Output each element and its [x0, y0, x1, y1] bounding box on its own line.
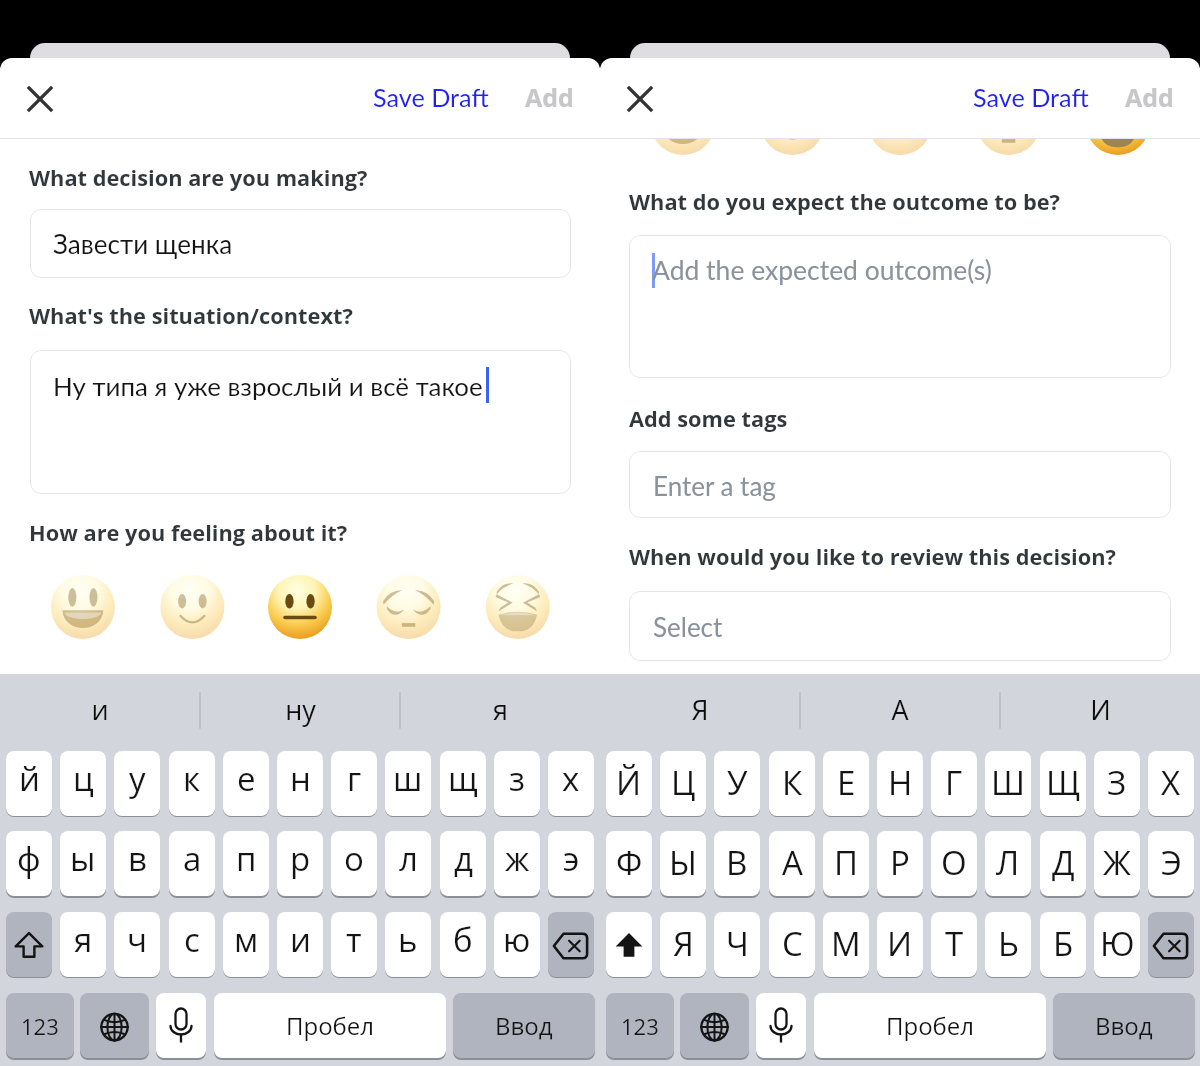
button[interactable]: ь — [385, 912, 431, 977]
button[interactable]: Ввод — [1053, 993, 1195, 1058]
button[interactable]: х — [548, 751, 594, 816]
button[interactable]: К — [769, 751, 815, 816]
button[interactable]: с — [169, 912, 215, 977]
button[interactable]: Sad — [377, 575, 441, 639]
button[interactable]: к — [169, 751, 215, 816]
button[interactable]: щ — [440, 751, 486, 816]
button[interactable]: з — [494, 751, 540, 816]
button[interactable]: П — [823, 831, 869, 896]
button[interactable]: Backspace — [548, 912, 594, 977]
button[interactable]: ы — [60, 831, 106, 896]
button[interactable]: Пробел — [214, 993, 446, 1058]
button[interactable]: е — [223, 751, 269, 816]
button[interactable]: О — [931, 831, 977, 896]
button[interactable]: ю — [494, 912, 540, 977]
button[interactable]: Пробел — [814, 993, 1046, 1058]
button[interactable]: Ь — [985, 912, 1031, 977]
button[interactable]: Б — [1040, 912, 1086, 977]
button[interactable]: ц — [60, 751, 106, 816]
button[interactable]: о — [331, 831, 377, 896]
button[interactable]: э — [548, 831, 594, 896]
button[interactable]: 123 — [606, 993, 674, 1058]
button[interactable]: ш — [385, 751, 431, 816]
button[interactable]: у — [114, 751, 160, 816]
button[interactable]: м — [223, 912, 269, 977]
button[interactable]: Add — [1115, 68, 1184, 126]
button[interactable]: Ц — [660, 751, 706, 816]
button[interactable]: Neutral — [268, 575, 332, 639]
button[interactable]: С — [769, 912, 815, 977]
button[interactable]: Ж — [1094, 831, 1140, 896]
button[interactable]: А — [769, 831, 815, 896]
button[interactable]: и — [277, 912, 323, 977]
button[interactable]: г — [331, 751, 377, 816]
button[interactable]: я — [60, 912, 106, 977]
button[interactable]: Г — [931, 751, 977, 816]
button[interactable]: Ш — [985, 751, 1031, 816]
button[interactable]: Т — [931, 912, 977, 977]
button[interactable]: Д — [1040, 831, 1086, 896]
button[interactable]: У — [714, 751, 760, 816]
button[interactable]: Ч — [714, 912, 760, 977]
button[interactable]: б — [440, 912, 486, 977]
button[interactable]: Very sad — [486, 575, 550, 639]
staticText: Select — [653, 611, 723, 642]
button[interactable]: Voice input — [156, 993, 206, 1058]
button[interactable]: Save Draft — [963, 70, 1099, 124]
button[interactable]: ну — [200, 674, 400, 751]
button[interactable]: Й — [606, 751, 652, 816]
button[interactable]: В — [714, 831, 760, 896]
button[interactable]: 123 — [6, 993, 74, 1058]
button[interactable]: Voice input — [756, 993, 806, 1058]
button[interactable]: Н — [877, 751, 923, 816]
button[interactable]: Ю — [1094, 912, 1140, 977]
button[interactable]: Very happy — [51, 575, 115, 639]
button[interactable]: Щ — [1040, 751, 1086, 816]
button[interactable]: ч — [114, 912, 160, 977]
button[interactable]: ф — [6, 831, 52, 896]
button[interactable]: Add — [515, 68, 584, 126]
button[interactable]: Enter a tag — [629, 451, 1171, 518]
button[interactable]: И — [877, 912, 923, 977]
button[interactable]: Р — [877, 831, 923, 896]
button[interactable]: а — [169, 831, 215, 896]
button[interactable]: н — [277, 751, 323, 816]
button[interactable]: я — [400, 674, 600, 751]
button[interactable]: Save Draft — [363, 70, 499, 124]
button[interactable]: Ф — [606, 831, 652, 896]
button[interactable]: Shift — [606, 912, 652, 977]
button[interactable]: Select — [629, 591, 1171, 661]
button[interactable]: в — [114, 831, 160, 896]
button[interactable]: Close — [618, 77, 662, 121]
staticText: д — [454, 836, 473, 881]
button[interactable]: Я — [660, 912, 706, 977]
button[interactable]: Happy — [160, 575, 224, 639]
button[interactable]: Ввод — [453, 993, 595, 1058]
button[interactable]: М — [823, 912, 869, 977]
button[interactable]: Х — [1148, 751, 1194, 816]
button[interactable]: д — [440, 831, 486, 896]
button[interactable]: Backspace — [1148, 912, 1194, 977]
button[interactable]: и — [0, 674, 200, 751]
button[interactable]: Add the expected outcome(s) — [629, 235, 1171, 378]
button[interactable]: л — [385, 831, 431, 896]
button[interactable]: З — [1094, 751, 1140, 816]
button[interactable]: Завести щенка — [30, 209, 571, 278]
button[interactable]: п — [223, 831, 269, 896]
button[interactable]: Ы — [660, 831, 706, 896]
button[interactable]: Л — [985, 831, 1031, 896]
button[interactable]: Switch keyboard language — [680, 993, 749, 1058]
button[interactable]: Switch keyboard language — [80, 993, 149, 1058]
button[interactable]: Э — [1148, 831, 1194, 896]
button[interactable]: Ну типа я уже взрослый и всё такое — [30, 350, 571, 494]
button[interactable]: А — [800, 674, 1000, 751]
button[interactable]: Close — [18, 77, 62, 121]
button[interactable]: И — [1000, 674, 1200, 751]
button[interactable]: р — [277, 831, 323, 896]
button[interactable]: т — [331, 912, 377, 977]
button[interactable]: Shift — [6, 912, 52, 977]
button[interactable]: й — [6, 751, 52, 816]
button[interactable]: Я — [600, 674, 800, 751]
button[interactable]: ж — [494, 831, 540, 896]
button[interactable]: Е — [823, 751, 869, 816]
